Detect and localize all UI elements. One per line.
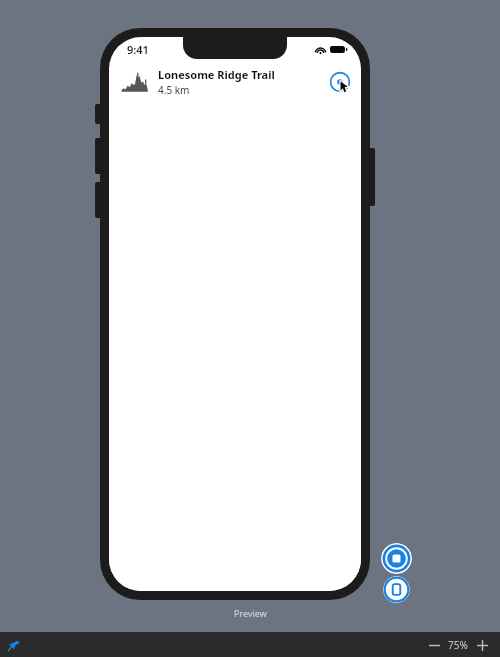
staticText: 75%: [448, 638, 468, 652]
staticText: Lonesome Ridge Trail: [158, 67, 275, 82]
staticText: Preview: [234, 607, 267, 619]
button[interactable]: Run preview on device: [383, 576, 410, 603]
button[interactable]: Zoom in: [472, 634, 492, 656]
button[interactable]: Zoom out: [424, 634, 444, 656]
staticText: 9:41: [127, 42, 149, 57]
staticText: 4.5 km: [158, 83, 190, 97]
button[interactable]: Trail options: [329, 71, 351, 93]
button[interactable]: Live preview: [381, 543, 412, 574]
button[interactable]: Pin preview: [2, 632, 26, 657]
